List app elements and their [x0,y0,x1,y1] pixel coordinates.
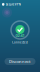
staticText: SecureVPN [6,3,21,6]
staticText: Connected [12,41,28,44]
staticText: 02:41 [15,33,24,38]
staticText: Disconnect [9,59,31,64]
button[interactable]: Disconnect [4,58,35,65]
